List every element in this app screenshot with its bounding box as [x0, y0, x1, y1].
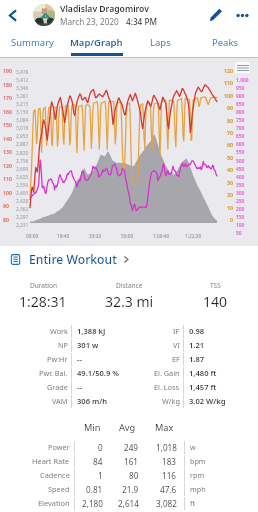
staticText: 3,082 [156, 498, 177, 509]
staticText: 1,018 [156, 442, 177, 453]
staticText: 3,018 [16, 125, 29, 132]
staticText: 700 [236, 125, 245, 132]
staticText: 33:20 [89, 233, 102, 240]
staticText: 3.02 W/kg [189, 396, 226, 406]
staticText: 50 [227, 154, 233, 161]
staticText: 130 [3, 148, 12, 155]
staticText: 2,493 [16, 190, 29, 197]
button[interactable]: Entire Workout [0, 246, 258, 272]
staticText: 47.6 [160, 484, 177, 495]
staticText: Entire Workout [29, 251, 117, 268]
staticText: 350 [236, 182, 245, 189]
staticText: 10 [227, 204, 233, 211]
staticText: 750 [236, 117, 245, 124]
staticText: 00:00 [26, 233, 39, 240]
staticText: 90 [227, 104, 233, 111]
staticText: Vladislav Dragomirov [60, 3, 149, 15]
staticText: IF [173, 326, 180, 336]
staticText: 0.81 [86, 484, 103, 495]
staticText: 120 [3, 162, 12, 169]
staticText: 70 [227, 129, 233, 136]
staticText: 50:00 [121, 233, 134, 240]
staticText: 249 [124, 442, 139, 453]
staticText: 300 [236, 190, 245, 197]
staticText: 400 [236, 174, 245, 181]
staticText: 1 [98, 470, 103, 481]
staticText: Summary [11, 36, 54, 49]
staticText: 0.98 [189, 326, 205, 336]
staticText: TSS [210, 281, 221, 290]
staticText: El. Gain [154, 368, 180, 378]
staticText: 800 [236, 109, 245, 116]
staticText: W/kg [162, 396, 180, 406]
staticText: Pwr. Bal. [39, 368, 68, 378]
staticText: 1,480 ft [189, 368, 217, 378]
button[interactable]: More options [229, 0, 255, 30]
staticText: 0 [230, 216, 233, 223]
staticText: 650 [236, 133, 245, 140]
staticText: 500 [236, 158, 245, 165]
staticText: 1:06:40 [153, 233, 170, 240]
staticText: 2,614 [118, 498, 139, 509]
staticText: 2,362 [16, 206, 29, 213]
button[interactable]: Summary [0, 30, 64, 57]
staticText: 110 [3, 175, 12, 182]
staticText: 60 [227, 141, 233, 148]
staticText: EF [172, 354, 180, 364]
staticText: Grade [47, 382, 68, 392]
staticText: 150 [3, 121, 12, 128]
staticText: 100 [236, 222, 245, 229]
staticText: 100 [224, 92, 233, 99]
staticText: VI [173, 340, 180, 350]
staticText: Distance [116, 281, 143, 290]
staticText: Speed [48, 484, 70, 494]
staticText: 180 [3, 81, 12, 88]
staticText: 200 [236, 206, 245, 213]
button[interactable]: Map/Graph [64, 30, 128, 57]
staticText: 2,820 [16, 150, 29, 157]
staticText: 550 [236, 149, 245, 156]
staticText: ft [190, 498, 196, 508]
staticText: 900 [236, 93, 245, 100]
staticText: -- [77, 354, 82, 364]
staticText: 2,297 [16, 214, 29, 221]
staticText: March 23, 2020 [60, 16, 119, 27]
staticText: 110 [224, 79, 233, 86]
staticText: 190 [3, 67, 12, 74]
staticText: 140 [3, 135, 12, 142]
staticText: -- [77, 382, 82, 392]
staticText: 4:34 PM [126, 16, 157, 27]
staticText: Cadence [40, 470, 70, 480]
staticText: 0 [98, 442, 103, 453]
staticText: 20 [227, 191, 233, 198]
staticText: 1,457 ft [189, 382, 217, 392]
staticText: Min [84, 421, 101, 434]
staticText: 2,559 [16, 182, 29, 189]
staticText: 84 [93, 456, 103, 467]
staticText: El. Loss [154, 382, 180, 392]
button[interactable]: Laps [128, 30, 193, 57]
staticText: 150 [236, 214, 245, 221]
button[interactable]: Chart legend [235, 62, 250, 73]
staticText: 2,625 [16, 174, 29, 181]
staticText: 1.87 [189, 354, 205, 364]
button[interactable]: Peaks [193, 30, 258, 57]
staticText: 1,388 kJ [77, 326, 106, 336]
staticText: Pw:Hr [47, 354, 68, 364]
staticText: rpm [190, 470, 205, 480]
button[interactable]: Edit [203, 0, 229, 30]
staticText: 80 [227, 117, 233, 124]
staticText: 2,428 [16, 198, 29, 205]
staticText: NP [58, 340, 68, 350]
staticText: 306 m/h [77, 396, 108, 406]
staticText: 950 [236, 85, 245, 92]
staticText: 600 [236, 141, 245, 148]
staticText: 21.9 [122, 484, 139, 495]
staticText: 100 [3, 189, 12, 196]
staticText: 50 [236, 230, 242, 237]
staticText: Map/Graph [70, 36, 123, 49]
button[interactable]: Back [0, 0, 24, 30]
staticText: Peaks [212, 36, 239, 49]
staticText: 80 [3, 216, 9, 223]
staticText: 3,084 [16, 117, 29, 124]
